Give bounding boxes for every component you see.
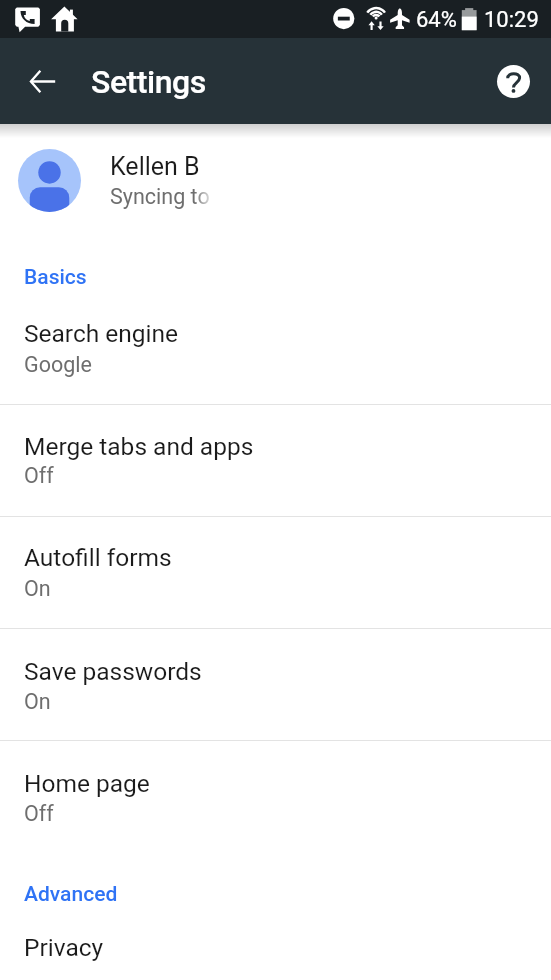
button[interactable]: Privacy xyxy=(0,916,551,980)
button[interactable]: Advanced xyxy=(0,863,551,909)
button[interactable]: Merge tabs and apps xyxy=(0,404,551,517)
staticText: On xyxy=(24,576,51,601)
button[interactable]: Autofill forms xyxy=(0,516,551,627)
staticText: Kellen B xyxy=(110,152,200,181)
staticText: Basics xyxy=(24,265,87,290)
button[interactable]: Save passwords xyxy=(0,628,551,740)
staticText: Save passwords xyxy=(24,657,202,686)
staticText: Google xyxy=(24,352,92,377)
staticText: On xyxy=(24,689,51,714)
staticText: Settings xyxy=(91,63,206,101)
staticText: Syncing to xyxy=(110,184,210,209)
staticText: Off xyxy=(24,463,54,488)
staticText: Search engine xyxy=(24,319,179,348)
staticText: Off xyxy=(24,801,54,826)
button[interactable]: Help xyxy=(489,57,537,105)
staticText: 64% xyxy=(416,7,457,33)
staticText: Merge tabs and apps xyxy=(24,432,254,461)
button[interactable]: Back xyxy=(18,57,66,105)
staticText: 10:29 xyxy=(484,7,539,33)
staticText: Privacy xyxy=(24,933,104,962)
button[interactable]: Home page xyxy=(0,740,551,841)
button[interactable]: Kellen B xyxy=(0,138,551,224)
staticText: Advanced xyxy=(24,882,118,907)
button[interactable]: Basics xyxy=(0,246,551,292)
button[interactable]: Search engine xyxy=(0,291,551,404)
staticText: Autofill forms xyxy=(24,543,172,572)
staticText: Home page xyxy=(24,769,150,798)
